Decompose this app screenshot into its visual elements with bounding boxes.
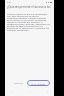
button[interactable]: Abrir ajustes	[27, 80, 50, 86]
staticText: Cuando abras un enlace compatible con es…	[7, 12, 51, 32]
button[interactable]: Ahora no	[13, 81, 24, 86]
button[interactable]: Recents	[46, 90, 48, 92]
staticText: Ahora no	[14, 82, 23, 85]
staticText: 9:41	[7, 1, 12, 4]
staticText: ¿Quieres permitir el acceso a los datos …	[7, 5, 52, 9]
button[interactable]: Back	[11, 90, 13, 92]
staticText: Abrir ajustes	[31, 82, 46, 85]
button[interactable]: Home	[29, 90, 31, 92]
